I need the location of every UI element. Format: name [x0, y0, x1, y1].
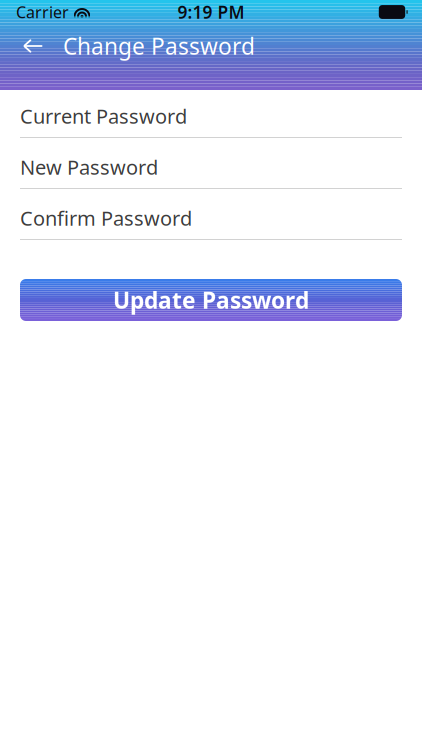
staticText: Current Password	[20, 103, 187, 129]
staticText: 9:19 PM	[177, 0, 244, 23]
button[interactable]: Back	[11, 24, 55, 68]
staticText: Carrier	[16, 1, 69, 23]
staticText: New Password	[20, 154, 158, 180]
staticText: Change Password	[63, 31, 255, 61]
button[interactable]: Update Password	[20, 279, 402, 321]
staticText: Update Password	[113, 285, 309, 315]
staticText: Confirm Password	[20, 205, 192, 231]
